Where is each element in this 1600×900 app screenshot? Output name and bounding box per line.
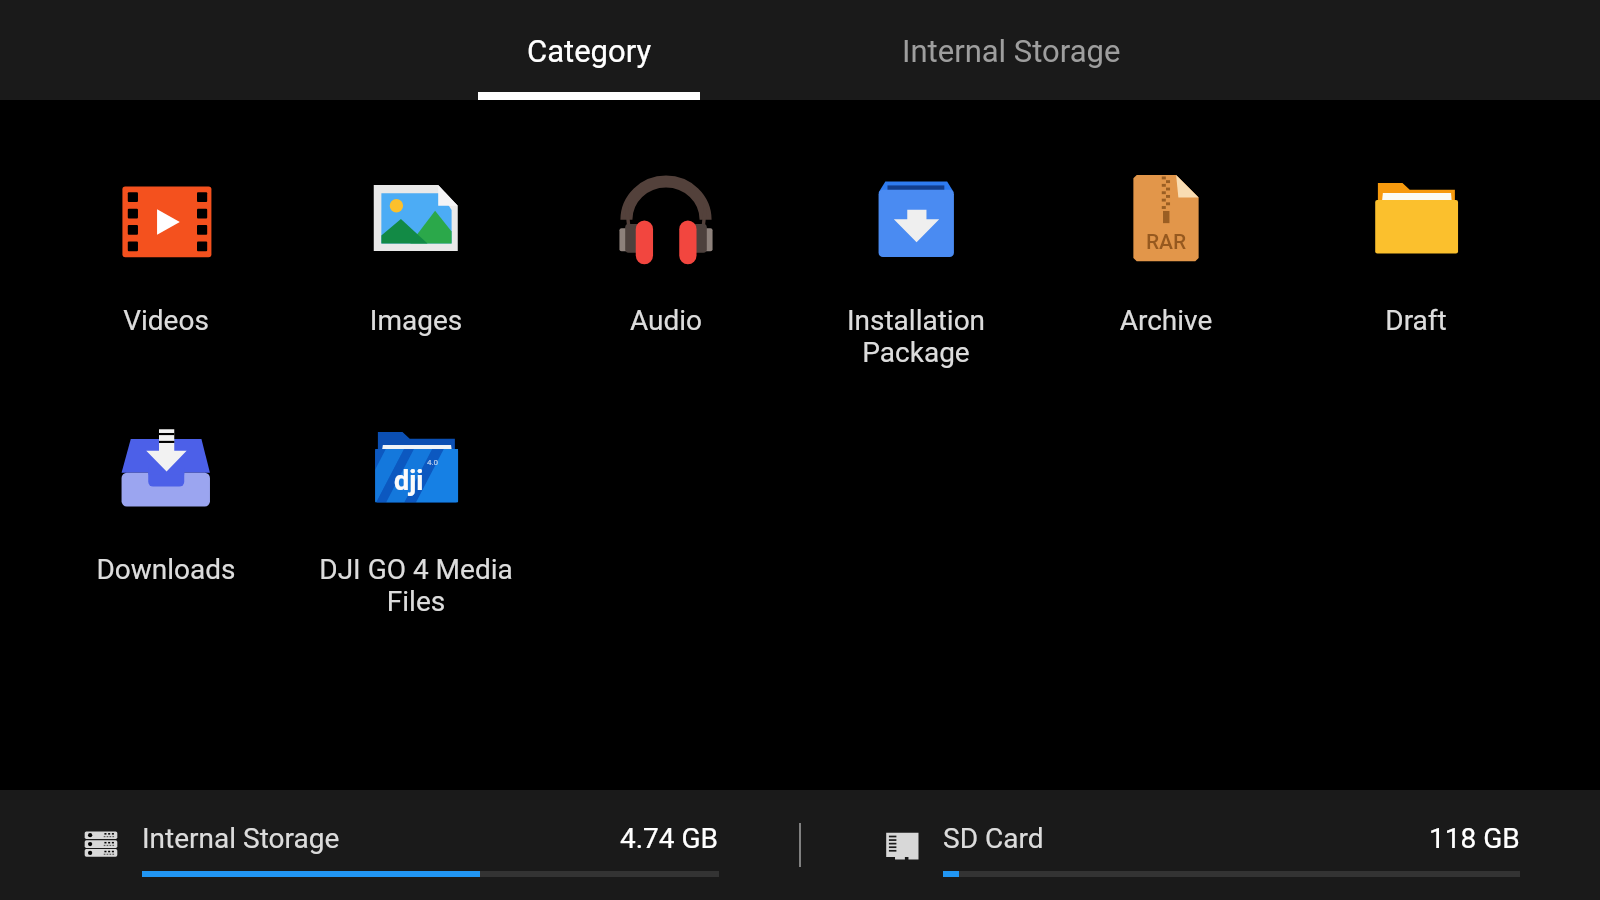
staticText: dji [394,465,424,497]
button[interactable]: dji [291,349,541,598]
staticText: Downloads [59,553,273,586]
button[interactable]: Category [378,0,800,100]
staticText: DJI GO 4 Media Files [309,553,523,618]
staticText: Internal Storage [902,33,1121,69]
button[interactable]: Images [291,100,541,349]
staticText: Audio [559,304,773,337]
button[interactable]: Internal Storage [800,0,1222,100]
button[interactable]: Installation Package [791,100,1041,349]
staticText: Installation Package [809,304,1023,369]
button[interactable]: Draft [1291,100,1541,349]
staticText: Internal Storage [142,822,340,855]
button[interactable]: Internal storage [0,790,799,900]
staticText: Draft [1309,304,1523,337]
staticText: Videos [59,304,273,337]
button[interactable]: RAR [1041,100,1291,349]
button[interactable]: SD card [801,790,1600,900]
staticText: SD Card [943,822,1044,855]
staticText: Archive [1059,304,1273,337]
button[interactable]: Videos [41,100,291,349]
staticText: Images [309,304,523,337]
staticText: Category [527,33,652,69]
staticText: 4.74 GB [620,822,719,855]
other: Internal storage [84,828,118,862]
other: SD card [885,828,919,862]
staticText: 118 GB [1429,822,1520,855]
staticText: 4.0 [427,458,439,467]
button[interactable]: Downloads [41,349,291,598]
staticText: RAR [1146,230,1187,255]
button[interactable]: Audio [541,100,791,349]
